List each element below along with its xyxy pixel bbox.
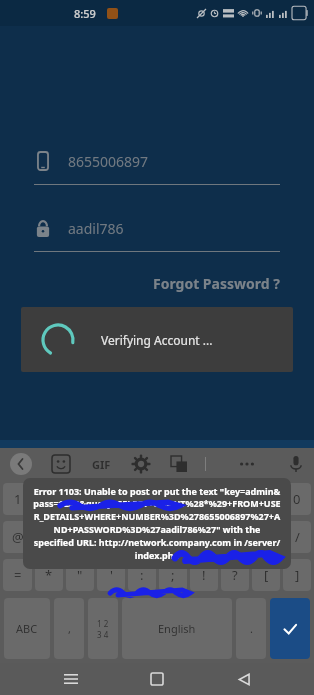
staticText: 8 xyxy=(231,490,239,508)
button[interactable]: + xyxy=(190,521,218,553)
staticText: + xyxy=(200,528,208,546)
staticText: 1 2 xyxy=(97,618,109,629)
button[interactable]: [ xyxy=(252,559,280,591)
button[interactable]: 8655006897 xyxy=(34,144,280,185)
button[interactable]: @ xyxy=(3,521,32,553)
staticText: - xyxy=(171,528,176,546)
staticText: 8:59 xyxy=(74,6,96,21)
button[interactable]: ? xyxy=(221,559,249,591)
button[interactable]: ] xyxy=(283,559,311,591)
button[interactable]: 7 xyxy=(190,483,218,515)
staticText: 6 xyxy=(169,490,177,508)
staticText: : xyxy=(140,566,144,584)
button[interactable] xyxy=(34,315,151,359)
button[interactable]: Back xyxy=(228,663,260,695)
staticText: / xyxy=(295,528,300,546)
button[interactable]: 4 xyxy=(97,483,125,515)
staticText: . xyxy=(250,621,253,636)
button[interactable]: " xyxy=(66,559,94,591)
staticText: " xyxy=(77,566,83,584)
staticText: GIF xyxy=(92,457,111,472)
staticText: * xyxy=(45,566,53,584)
staticText: ' xyxy=(110,566,113,584)
staticText: 8655006897 xyxy=(68,152,149,171)
staticText: 2 xyxy=(45,490,53,508)
button[interactable]: / xyxy=(283,521,311,553)
staticText: Error 1103: Unable to post or put the te… xyxy=(33,485,281,562)
staticText: _ xyxy=(108,528,114,546)
button[interactable]: ' xyxy=(97,559,125,591)
staticText: 3 4 xyxy=(97,629,109,640)
button[interactable]: ; xyxy=(159,559,187,591)
staticText: 0 xyxy=(293,490,301,508)
staticText: Forgot Password ? xyxy=(153,274,280,293)
button[interactable]: Voice input xyxy=(288,456,304,472)
button[interactable]: 6 xyxy=(159,483,187,515)
staticText: ! xyxy=(202,566,206,584)
staticText: @ xyxy=(12,528,24,546)
button[interactable]: & xyxy=(128,521,156,553)
button[interactable]: _ xyxy=(97,521,125,553)
button[interactable]: 1 xyxy=(3,483,32,515)
staticText: 7 xyxy=(200,490,208,508)
staticText: 9 xyxy=(262,490,270,508)
button[interactable]: Recent apps xyxy=(55,663,87,695)
button[interactable]: * xyxy=(35,559,63,591)
staticText: ? xyxy=(232,566,238,584)
button[interactable]: Enter xyxy=(270,598,310,659)
button[interactable]: ABC xyxy=(4,598,50,659)
button[interactable]: ) xyxy=(252,521,280,553)
button[interactable]: 8 xyxy=(221,483,249,515)
button[interactable]: # xyxy=(35,521,63,553)
staticText: , xyxy=(68,621,71,636)
staticText: 1 xyxy=(14,490,22,508)
staticText: ; xyxy=(171,566,175,584)
staticText: $ xyxy=(76,528,84,546)
button[interactable]: 5 xyxy=(128,483,156,515)
staticText: 4 xyxy=(107,490,115,508)
staticText: aadil786 xyxy=(68,219,124,238)
button[interactable]: Translate xyxy=(171,456,187,472)
staticText: & xyxy=(137,528,147,546)
button[interactable]: Home xyxy=(141,663,173,695)
staticText: ) xyxy=(264,528,268,546)
staticText: 5 xyxy=(138,490,146,508)
button[interactable]: English xyxy=(122,598,232,659)
button[interactable]: Forgot Password ? xyxy=(34,270,280,297)
button[interactable]: - xyxy=(159,521,187,553)
button[interactable]: aadil786 xyxy=(34,211,280,252)
staticText: = xyxy=(14,566,22,584)
button[interactable]: GIF xyxy=(92,457,111,472)
button[interactable]: 9 xyxy=(252,483,280,515)
button[interactable]: ( xyxy=(221,521,249,553)
staticText: [ xyxy=(264,566,269,584)
button[interactable] xyxy=(163,315,280,359)
staticText: ( xyxy=(233,528,237,546)
staticText: Verifying Account ... xyxy=(101,332,213,348)
button[interactable]: 2 xyxy=(35,483,63,515)
staticText: ABC xyxy=(16,621,38,636)
button[interactable]: 0 xyxy=(283,483,311,515)
staticText: ] xyxy=(295,566,300,584)
button[interactable]: = xyxy=(3,559,32,591)
staticText: # xyxy=(45,528,54,546)
button[interactable]: Back xyxy=(10,453,32,475)
button[interactable]: ! xyxy=(190,559,218,591)
button[interactable]: More options xyxy=(238,455,256,473)
button[interactable]: Settings xyxy=(133,456,149,472)
staticText: 3 xyxy=(76,490,84,508)
button[interactable]: Stickers xyxy=(52,455,70,473)
button[interactable]: 1 2 xyxy=(88,598,118,659)
button[interactable]: : xyxy=(128,559,156,591)
button[interactable]: 3 xyxy=(66,483,94,515)
staticText: English xyxy=(158,621,196,636)
button[interactable]: $ xyxy=(66,521,94,553)
